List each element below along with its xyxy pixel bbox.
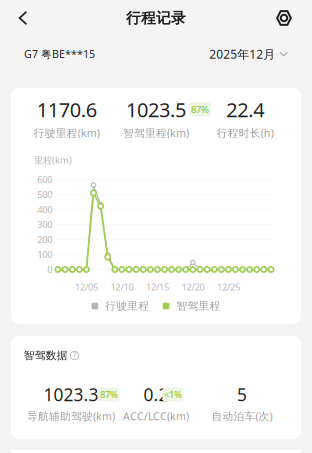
staticText: 5 <box>237 383 247 406</box>
staticText: 1023.3 <box>43 383 98 406</box>
staticText: 行驶里程 <box>105 299 149 312</box>
staticText: 导航辅助驾驶(km) <box>27 409 115 423</box>
staticText: <1% <box>164 388 182 401</box>
staticText: 300 <box>37 218 52 231</box>
staticText: 12/20 <box>181 281 204 293</box>
staticText: 智驾数据 <box>24 349 68 362</box>
staticText: 600 <box>37 173 52 186</box>
staticText: 200 <box>37 233 52 246</box>
staticText: 行驶里程(km) <box>34 126 100 140</box>
staticText: 智驾里程 <box>176 299 220 312</box>
staticText: 0 <box>47 263 52 276</box>
staticText: 智驾里程(km) <box>123 126 189 140</box>
staticText: 100 <box>37 248 52 261</box>
staticText: 12/15 <box>146 281 169 293</box>
staticText: 87% <box>191 103 209 116</box>
staticText: 1023.5 <box>126 96 186 123</box>
staticText: 2025年12月 <box>209 46 275 62</box>
staticText: G7 粤BE***15 <box>24 47 95 61</box>
staticText: 500 <box>37 188 52 201</box>
button[interactable]: 设置 <box>263 0 305 36</box>
staticText: 1170.6 <box>37 96 97 123</box>
button[interactable]: 返回 <box>0 0 46 36</box>
staticText: 12/10 <box>110 281 133 293</box>
staticText: ? <box>73 350 76 361</box>
staticText: 400 <box>37 203 52 216</box>
staticText: 12/25 <box>217 281 240 293</box>
staticText: 87% <box>100 388 118 401</box>
button[interactable]: 2025年12月 <box>209 41 288 67</box>
staticText: 0.2 <box>143 383 168 406</box>
staticText: 里程(km) <box>34 154 72 166</box>
staticText: 行程时长(h) <box>217 126 274 140</box>
staticText: ACC/LCC(km) <box>123 409 189 423</box>
staticText: 22.4 <box>226 96 264 123</box>
staticText: 12/05 <box>75 281 98 293</box>
staticText: 自动泊车(次) <box>211 409 272 423</box>
staticText: 行程记录 <box>126 9 186 27</box>
